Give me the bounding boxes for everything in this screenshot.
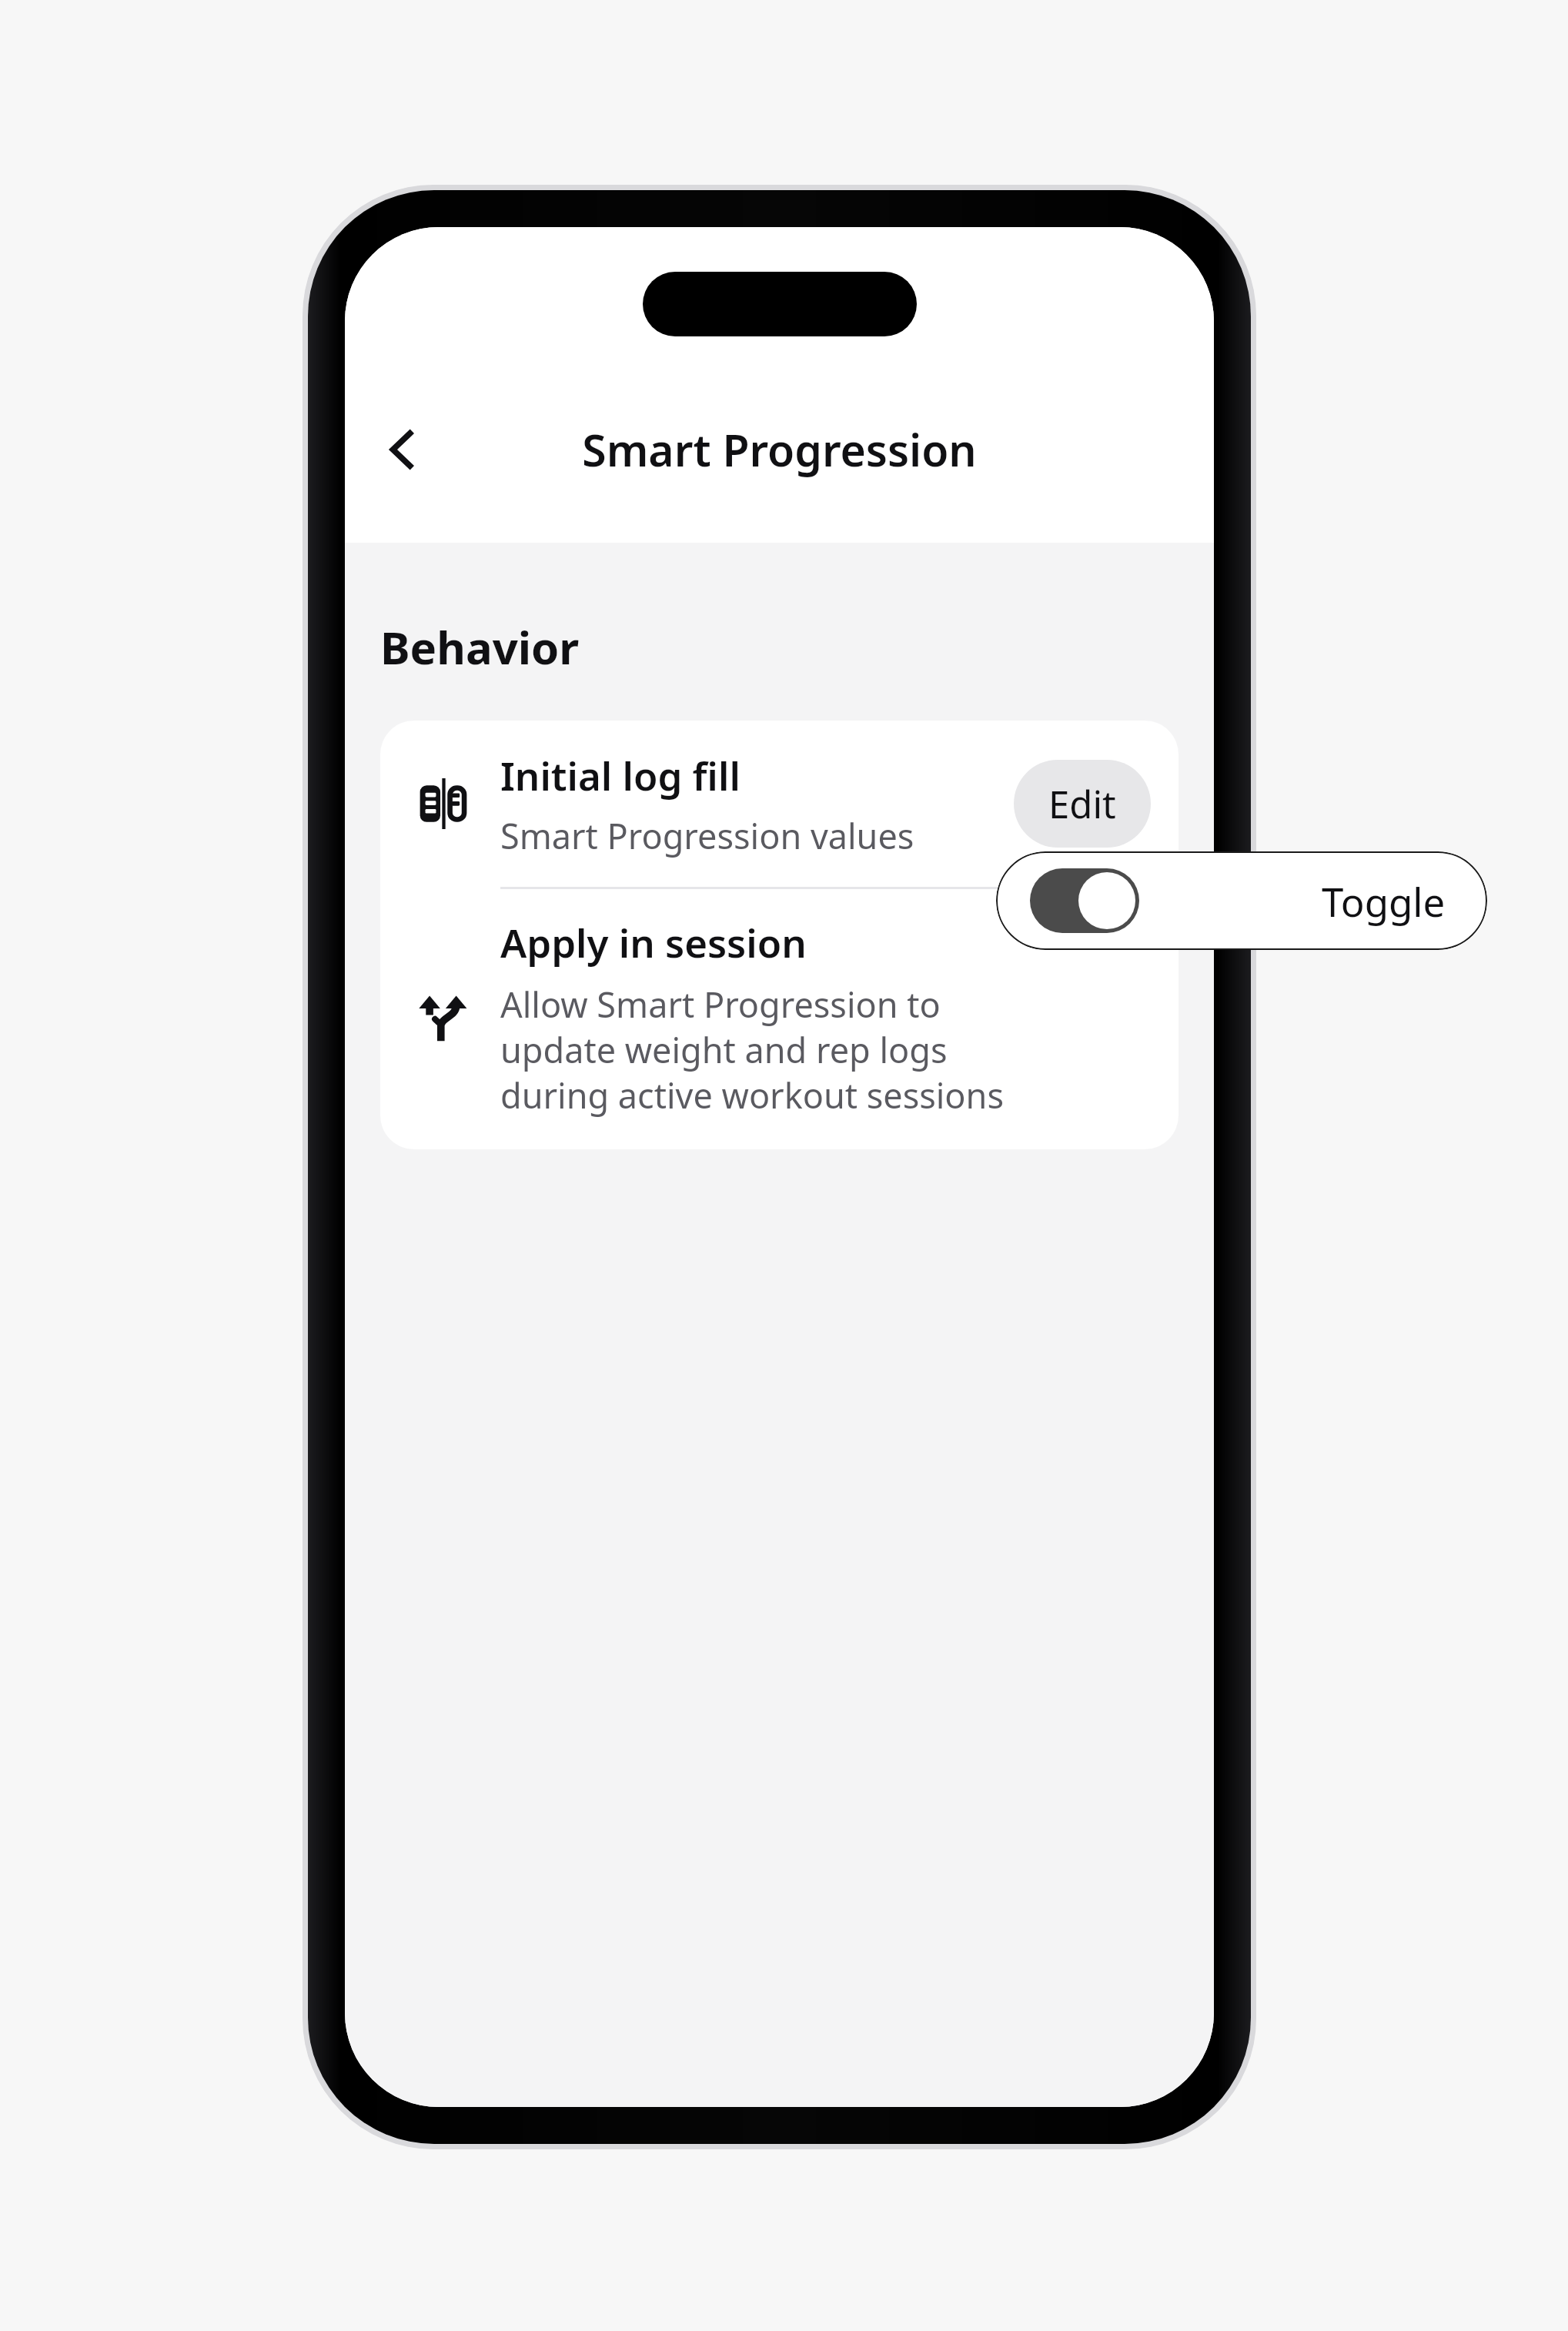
staticText: Apply in session xyxy=(500,915,807,968)
button[interactable]: Edit xyxy=(1014,760,1151,848)
staticText: Smart Progression values xyxy=(500,812,914,859)
staticText: Edit xyxy=(1048,778,1116,830)
staticText: Smart Progression xyxy=(582,420,977,480)
staticText: Toggle xyxy=(1322,875,1446,928)
staticText: Behavior xyxy=(380,617,580,677)
button[interactable]: Apply in session xyxy=(380,889,1179,1149)
button[interactable]: Back xyxy=(359,406,445,493)
staticText: Allow Smart Progression to update weight… xyxy=(500,981,1008,1119)
staticText: Initial log fill xyxy=(500,748,741,801)
button[interactable]: Initial log fill xyxy=(380,721,1179,887)
button[interactable]: Toggle xyxy=(996,851,1487,950)
